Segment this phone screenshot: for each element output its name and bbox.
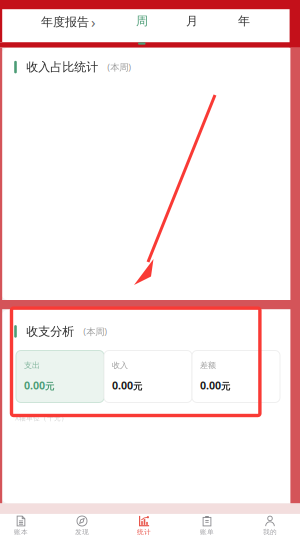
button[interactable]: 我的 bbox=[241, 514, 299, 535]
staticText: 0.00 bbox=[24, 378, 45, 392]
staticText: › bbox=[91, 12, 96, 32]
staticText: 元 bbox=[133, 381, 142, 392]
staticText: 年度报告 bbox=[41, 15, 89, 29]
staticText: 支出 bbox=[24, 360, 40, 370]
staticText: 周 bbox=[136, 14, 148, 28]
button[interactable]: 发现 bbox=[53, 514, 111, 535]
staticText: 收支分析 bbox=[26, 324, 74, 339]
button[interactable]: 差额 bbox=[192, 350, 280, 402]
staticText: 统计 bbox=[137, 528, 151, 535]
button[interactable]: 账单 bbox=[178, 514, 236, 535]
button[interactable]: 账本 bbox=[0, 514, 50, 535]
staticText: 我的 bbox=[263, 528, 277, 535]
button[interactable]: 支出 bbox=[16, 350, 104, 402]
staticText: (本周) bbox=[107, 61, 131, 73]
staticText: 发现 bbox=[75, 528, 89, 535]
staticText: 年 bbox=[238, 14, 250, 28]
staticText: 月 bbox=[186, 14, 198, 28]
staticText: (本周) bbox=[83, 325, 107, 338]
button[interactable]: 收入 bbox=[104, 350, 192, 402]
button[interactable]: 年度报告 bbox=[32, 8, 104, 36]
staticText: 元 bbox=[45, 381, 54, 392]
staticText: 0.00 bbox=[200, 378, 221, 392]
button[interactable]: 年 bbox=[222, 0, 266, 42]
staticText: 账单 bbox=[200, 528, 214, 535]
staticText: X轴单位（千元） bbox=[15, 413, 68, 422]
staticText: 收入 bbox=[112, 360, 128, 370]
button[interactable]: 统计 bbox=[115, 514, 173, 535]
staticText: 差额 bbox=[200, 360, 216, 370]
staticText: 收入占比统计 bbox=[26, 60, 98, 74]
staticText: 0.00 bbox=[112, 378, 133, 392]
button[interactable]: 周 bbox=[120, 0, 164, 42]
staticText: 元 bbox=[221, 381, 230, 392]
button[interactable]: 月 bbox=[170, 0, 214, 42]
staticText: 账本 bbox=[14, 528, 28, 535]
